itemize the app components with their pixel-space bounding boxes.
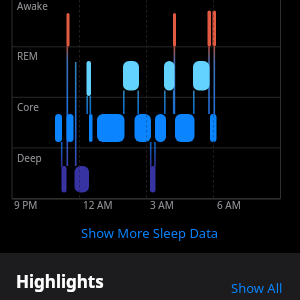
- staticText: Show All: [231, 279, 283, 297]
- staticText: 12 AM: [83, 198, 113, 212]
- staticText: 9 PM: [14, 198, 38, 212]
- staticText: Highlights: [16, 270, 104, 293]
- staticText: REM: [17, 49, 38, 63]
- staticText: 6 AM: [217, 198, 241, 212]
- button[interactable]: Show All: [231, 279, 283, 297]
- staticText: 3 AM: [150, 198, 174, 212]
- staticText: Show More Sleep Data: [81, 224, 219, 242]
- staticText: Core: [17, 100, 39, 114]
- button[interactable]: Show More Sleep Data: [81, 224, 219, 242]
- staticText: Awake: [17, 0, 48, 13]
- staticText: Deep: [17, 151, 42, 165]
